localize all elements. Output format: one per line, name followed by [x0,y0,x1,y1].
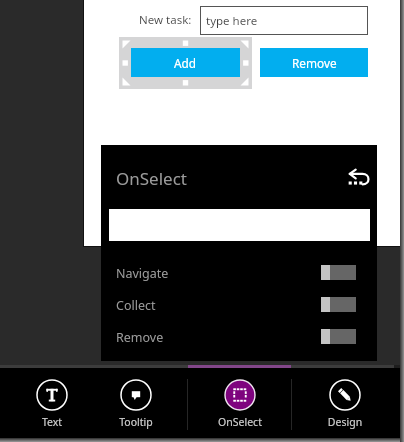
staticText: Text [12,415,92,429]
button[interactable]: type here [200,6,368,35]
button[interactable]: OnSelect [200,368,280,438]
button[interactable]: Undo [348,169,370,185]
staticText: Tooltip [96,415,176,429]
staticText: OnSelect [200,415,280,429]
button[interactable]: Tooltip [96,368,176,438]
button[interactable]: Design [305,368,385,438]
button[interactable]: Remove [101,323,377,355]
staticText: Navigate [116,265,169,282]
staticText: Add [174,55,197,71]
button[interactable]: Text [12,368,92,438]
button[interactable]: Collect [101,291,377,323]
staticText: Remove [292,55,337,71]
button[interactable]: Remove [260,48,368,77]
button[interactable]: Navigate [101,259,377,291]
staticText: New task: [139,12,192,28]
staticText: Remove [116,329,164,346]
button[interactable]: Add [131,48,240,77]
staticText: Design [305,415,385,429]
staticText: Collect [116,297,156,314]
staticText: type here [206,13,258,29]
staticText: OnSelect [116,167,187,190]
